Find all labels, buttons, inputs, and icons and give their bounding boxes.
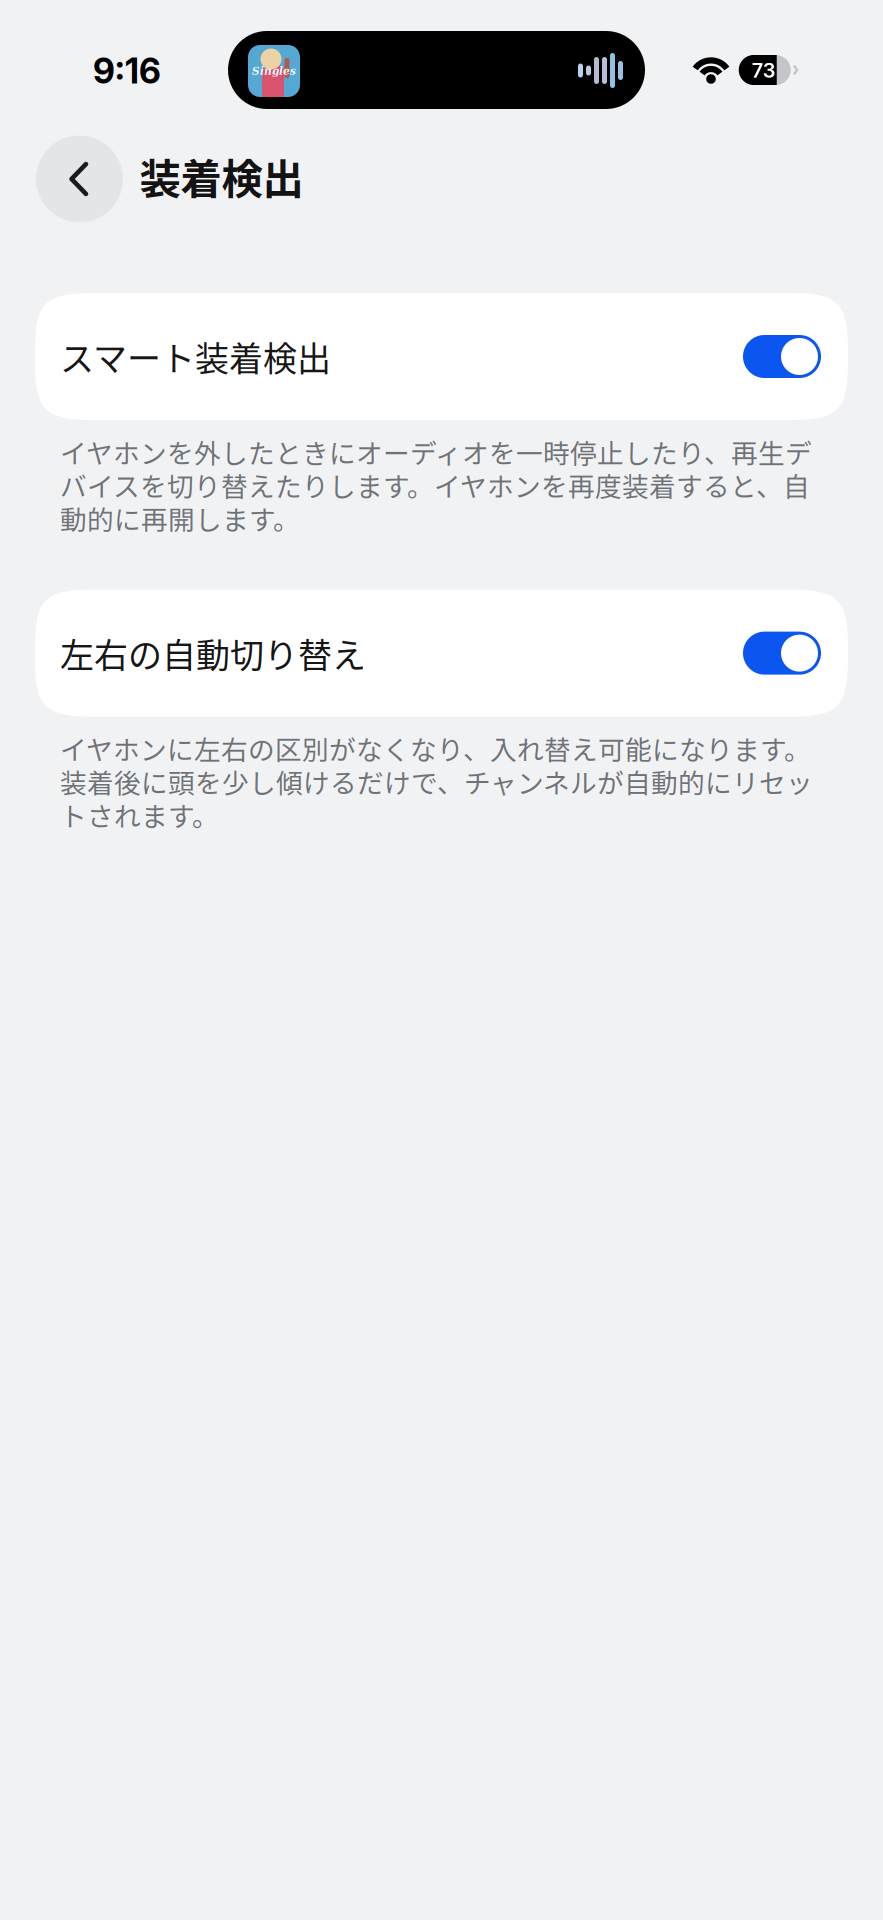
staticText: 9:16 <box>93 50 161 92</box>
button[interactable]: Back <box>36 135 123 222</box>
button[interactable]: スマート装着検出 <box>35 293 848 420</box>
staticText: イヤホンを外したときにオーディオを一時停止したり、再生デバイスを切り替えたりしま… <box>60 435 812 535</box>
staticText: Singles <box>252 65 296 77</box>
button[interactable]: 左右の自動切り替え <box>35 590 848 717</box>
staticText: 装着検出 <box>139 146 303 206</box>
staticText: スマート装着検出 <box>60 332 331 381</box>
staticText: イヤホンに左右の区別がなくなり、入れ替え可能になります。装着後に頭を少し傾けるだ… <box>60 732 813 831</box>
staticText: 73 <box>752 58 776 83</box>
staticText: 左右の自動切り替え <box>60 628 366 678</box>
